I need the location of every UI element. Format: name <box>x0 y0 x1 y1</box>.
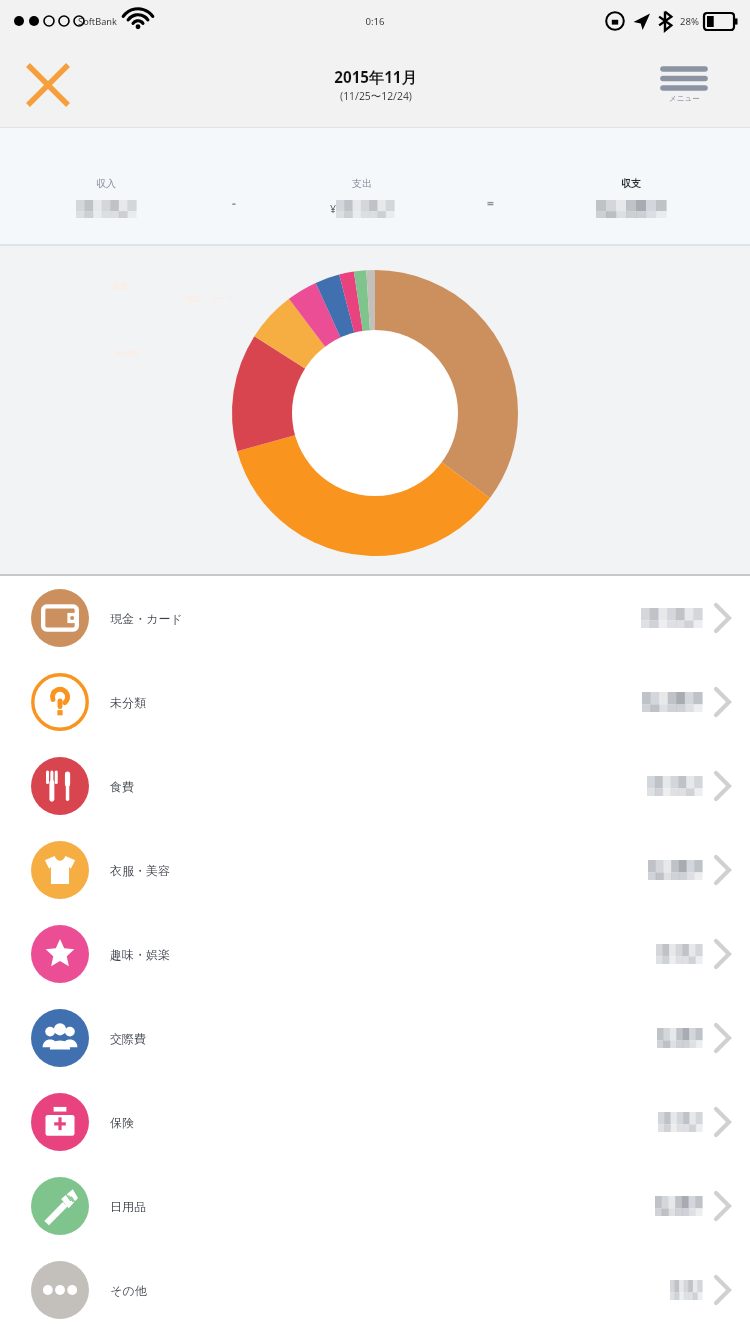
staticText: SoftBank <box>78 15 117 28</box>
button[interactable]: 食費 <box>0 744 750 828</box>
staticText: 収入 <box>96 177 116 190</box>
staticText: 保険 <box>110 1115 134 1130</box>
staticText: - <box>232 195 236 211</box>
button[interactable]: 閉じる <box>10 47 86 123</box>
staticText: 未分類 <box>115 348 139 358</box>
staticText: 2015年11月 <box>334 67 417 88</box>
staticText: 現金・カード <box>110 611 183 626</box>
button[interactable]: 未分類 <box>0 660 750 744</box>
staticText: 衣服・美容 <box>110 863 170 878</box>
staticText: 未分類 <box>110 695 146 710</box>
button[interactable]: 保険 <box>0 1080 750 1164</box>
button[interactable]: 日用品 <box>0 1164 750 1248</box>
staticText: 現金・カード <box>185 293 234 303</box>
staticText: 食費 <box>112 281 128 291</box>
button[interactable]: その他 <box>0 1248 750 1332</box>
staticText: 0:16 <box>365 15 385 28</box>
staticText: 収支 <box>621 177 641 190</box>
staticText: 28% <box>680 15 699 28</box>
staticText: その他 <box>110 1283 147 1298</box>
staticText: 食費 <box>110 779 134 794</box>
staticText: 日用品 <box>110 1199 146 1214</box>
button[interactable]: 現金・カード <box>0 576 750 660</box>
staticText: ¥ <box>330 202 336 216</box>
staticText: 趣味・娯楽 <box>110 947 170 962</box>
staticText: 交際費 <box>110 1031 146 1046</box>
staticText: メニュー <box>669 94 700 104</box>
button[interactable]: 趣味・娯楽 <box>0 912 750 996</box>
staticText: (11/25〜12/24) <box>340 89 412 103</box>
staticText: = <box>487 195 494 211</box>
button[interactable]: メニュー <box>636 66 732 104</box>
button[interactable]: 交際費 <box>0 996 750 1080</box>
staticText: 支出 <box>352 177 372 190</box>
button[interactable]: 衣服・美容 <box>0 828 750 912</box>
